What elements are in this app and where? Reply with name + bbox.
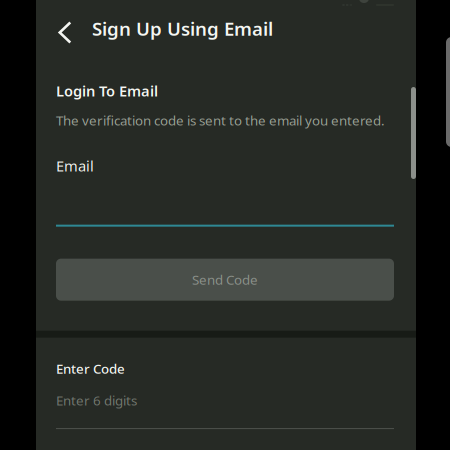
- staticText: Login To Email: [56, 81, 158, 100]
- button[interactable]: Enter 6 digits: [56, 391, 394, 429]
- staticText: Enter Code: [56, 360, 125, 377]
- staticText: Enter 6 digits: [56, 391, 137, 409]
- staticText: The verification code is sent to the ema…: [56, 111, 385, 129]
- staticText: Email: [56, 156, 94, 176]
- button[interactable]: Send Code: [56, 259, 394, 301]
- staticText: Sign Up Using Email: [92, 16, 273, 41]
- staticText: Send Code: [192, 271, 258, 288]
- button[interactable]: Back: [43, 3, 83, 53]
- button[interactable]: Email: [56, 156, 394, 227]
